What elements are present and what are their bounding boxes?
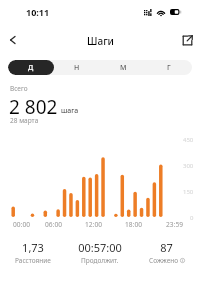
- button[interactable]: 1,73: [0, 240, 66, 265]
- button[interactable]: 00:57:00: [66, 240, 133, 265]
- staticText: 150: [183, 188, 194, 196]
- staticText: 28 марта: [10, 116, 39, 125]
- staticText: 87: [160, 240, 173, 255]
- staticText: Всего: [10, 84, 28, 93]
- staticText: Н: [74, 63, 80, 73]
- button[interactable]: Share: [176, 29, 198, 51]
- staticText: 18:00: [125, 220, 142, 229]
- staticText: 1,73: [22, 240, 44, 255]
- staticText: 00:00: [13, 220, 30, 229]
- staticText: 0: [190, 214, 194, 222]
- staticText: шага: [61, 106, 79, 116]
- staticText: Продолжит.: [81, 256, 119, 265]
- button[interactable]: Д: [8, 60, 54, 75]
- button[interactable]: 87: [133, 240, 200, 265]
- staticText: 2 802: [9, 94, 58, 120]
- staticText: Г: [167, 63, 171, 73]
- button[interactable]: М: [100, 60, 146, 75]
- button[interactable]: Back: [2, 29, 24, 51]
- staticText: Д: [28, 63, 34, 73]
- staticText: 06:00: [45, 220, 62, 229]
- staticText: М: [120, 63, 127, 73]
- staticText: 23:59: [166, 220, 183, 229]
- staticText: Расстояние: [15, 256, 51, 265]
- staticText: Сожжено: [149, 256, 179, 265]
- button[interactable]: Н: [54, 60, 100, 75]
- staticText: 300: [183, 162, 194, 170]
- staticText: 450: [183, 136, 194, 144]
- staticText: Шаги: [87, 34, 114, 48]
- staticText: 00:57:00: [78, 240, 122, 255]
- staticText: 12:00: [85, 220, 102, 229]
- staticText: 10:11: [26, 6, 50, 18]
- button[interactable]: Г: [146, 60, 192, 75]
